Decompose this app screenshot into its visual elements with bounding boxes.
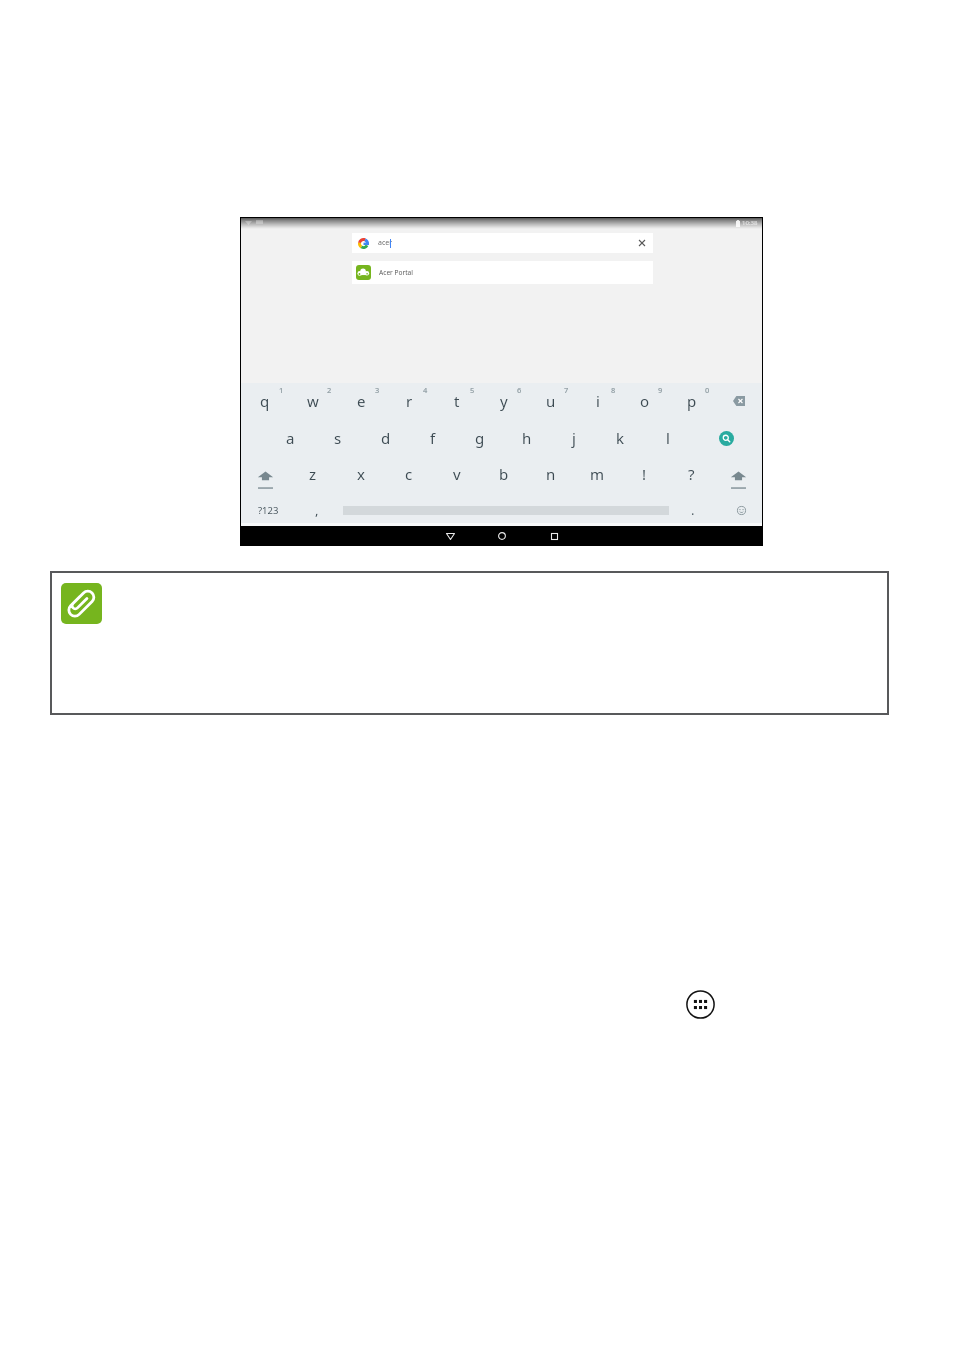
button[interactable]: Emoji [719,494,763,526]
staticText: h [522,428,532,448]
staticText: b [499,464,509,484]
button[interactable]: r [385,383,433,419]
staticText: ? [688,464,695,484]
staticText: , [315,501,319,519]
staticText: ! [642,464,647,484]
staticText: 5 [470,385,475,395]
button[interactable]: Space [339,494,669,526]
staticText: Acer Portal [379,268,414,277]
button[interactable]: u [527,383,574,419]
button[interactable]: Acer Portal [352,261,653,284]
staticText: 10:38 [742,219,758,227]
staticText: w [307,391,319,411]
staticText: acer [378,238,393,248]
staticText: d [381,428,391,448]
staticText: 7 [564,385,569,395]
button[interactable]: t [433,383,480,419]
button[interactable]: Recent apps [528,526,580,546]
staticText: . [691,501,695,519]
staticText: x [357,464,365,484]
button[interactable]: ? [668,456,715,492]
button[interactable]: m [574,456,621,492]
staticText: p [687,391,697,411]
button[interactable]: l [644,420,691,456]
staticText: o [640,391,650,411]
button[interactable]: n [527,456,574,492]
button[interactable]: v [433,456,480,492]
button[interactable]: z [289,456,337,492]
staticText: u [546,391,556,411]
staticText: t [454,391,460,411]
staticText: y [500,391,508,411]
button[interactable]: Clear [639,240,645,246]
button[interactable]: Backspace [715,383,762,419]
staticText: l [666,428,670,448]
staticText: 6 [517,385,522,395]
staticText: m [590,464,605,484]
staticText: 3 [375,385,380,395]
button[interactable]: f [409,420,456,456]
button[interactable]: b [480,456,527,492]
staticText: 2 [327,385,332,395]
staticText: 4 [423,385,428,395]
button[interactable]: Shift [241,456,289,492]
staticText: j [572,428,576,448]
staticText: c [405,464,413,484]
staticText: q [260,391,270,411]
button[interactable]: j [550,420,597,456]
button[interactable]: All apps [686,990,715,1019]
button[interactable]: Search [691,420,762,456]
button[interactable]: g [456,420,503,456]
button[interactable]: . [673,494,713,526]
staticText: ?123 [258,504,279,517]
button[interactable]: y [480,383,527,419]
button[interactable]: e [337,383,385,419]
staticText: s [334,428,342,448]
staticText: 1 [279,385,284,395]
button[interactable]: h [503,420,550,456]
staticText: f [430,428,436,448]
button[interactable]: x [337,456,385,492]
button[interactable]: Home [476,526,528,546]
button[interactable]: p [668,383,715,419]
button[interactable]: ! [621,456,668,492]
button[interactable]: acer [352,233,653,253]
staticText: 9 [658,385,663,395]
staticText: v [453,464,461,484]
staticText: k [616,428,625,448]
button[interactable]: i [574,383,621,419]
staticText: 0 [705,385,710,395]
button[interactable]: , [297,494,337,526]
button[interactable]: d [362,420,409,456]
button[interactable]: w [289,383,337,419]
staticText: a [286,428,295,448]
button[interactable]: Shift [715,456,762,492]
staticText: i [596,391,600,411]
staticText: e [357,391,366,411]
button[interactable]: Back [424,526,476,546]
button[interactable]: a [266,420,314,456]
staticText: r [406,391,413,411]
staticText: 8 [611,385,616,395]
button[interactable]: q [241,383,289,419]
button[interactable]: c [385,456,433,492]
button[interactable]: k [597,420,644,456]
button[interactable]: s [314,420,362,456]
staticText: z [309,464,317,484]
button[interactable]: o [621,383,668,419]
staticText: g [475,428,485,448]
staticText: n [546,464,556,484]
button[interactable]: ?123 [241,494,295,526]
